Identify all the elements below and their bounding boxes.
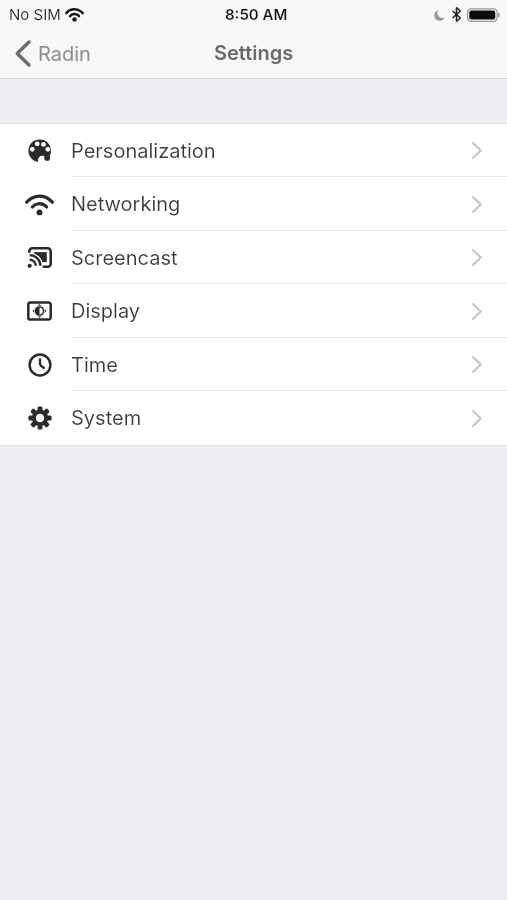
staticText: Radin	[38, 42, 91, 66]
staticText: Personalization	[71, 139, 216, 163]
button[interactable]: System	[0, 391, 507, 445]
button[interactable]: Display	[0, 284, 507, 338]
button[interactable]: Personalization	[0, 124, 507, 177]
button[interactable]: Radin	[0, 40, 91, 67]
staticText: System	[71, 406, 142, 430]
staticText: Settings	[214, 41, 294, 65]
staticText: 8:50 AM	[225, 5, 288, 23]
button[interactable]: Time	[0, 338, 507, 391]
button[interactable]: Screencast	[0, 231, 507, 284]
staticText: No SIM	[9, 5, 61, 23]
button[interactable]: Networking	[0, 177, 507, 231]
staticText: Time	[71, 353, 118, 377]
staticText: Networking	[71, 192, 181, 216]
staticText: Display	[71, 299, 141, 323]
staticText: Screencast	[71, 246, 178, 270]
